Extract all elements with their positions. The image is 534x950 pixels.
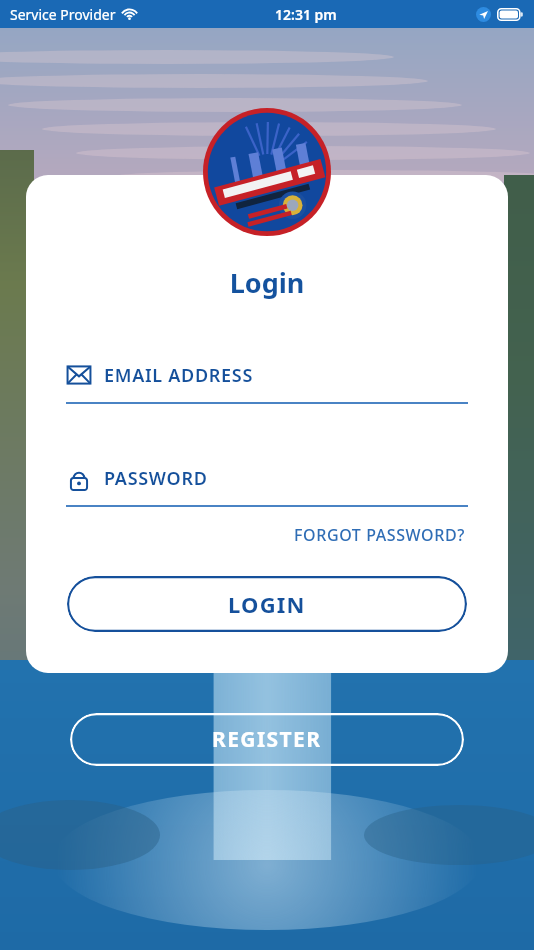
staticText: PASSWORD bbox=[104, 466, 208, 491]
staticText: FORGOT PASSWORD? bbox=[294, 524, 465, 546]
button[interactable]: PASSWORD bbox=[66, 465, 468, 507]
button[interactable]: FORGOT PASSWORD? bbox=[292, 521, 467, 549]
button[interactable]: EMAIL ADDRESS bbox=[66, 362, 468, 404]
staticText: REGISTER bbox=[212, 725, 322, 754]
button[interactable]: LOGIN bbox=[67, 576, 467, 632]
button[interactable]: REGISTER bbox=[70, 713, 464, 766]
staticText: Service Provider bbox=[10, 5, 116, 24]
staticText: LOGIN bbox=[228, 589, 306, 619]
staticText: EMAIL ADDRESS bbox=[104, 363, 253, 388]
staticText: Login bbox=[26, 264, 508, 301]
staticText: 12:31 pm bbox=[275, 5, 337, 24]
